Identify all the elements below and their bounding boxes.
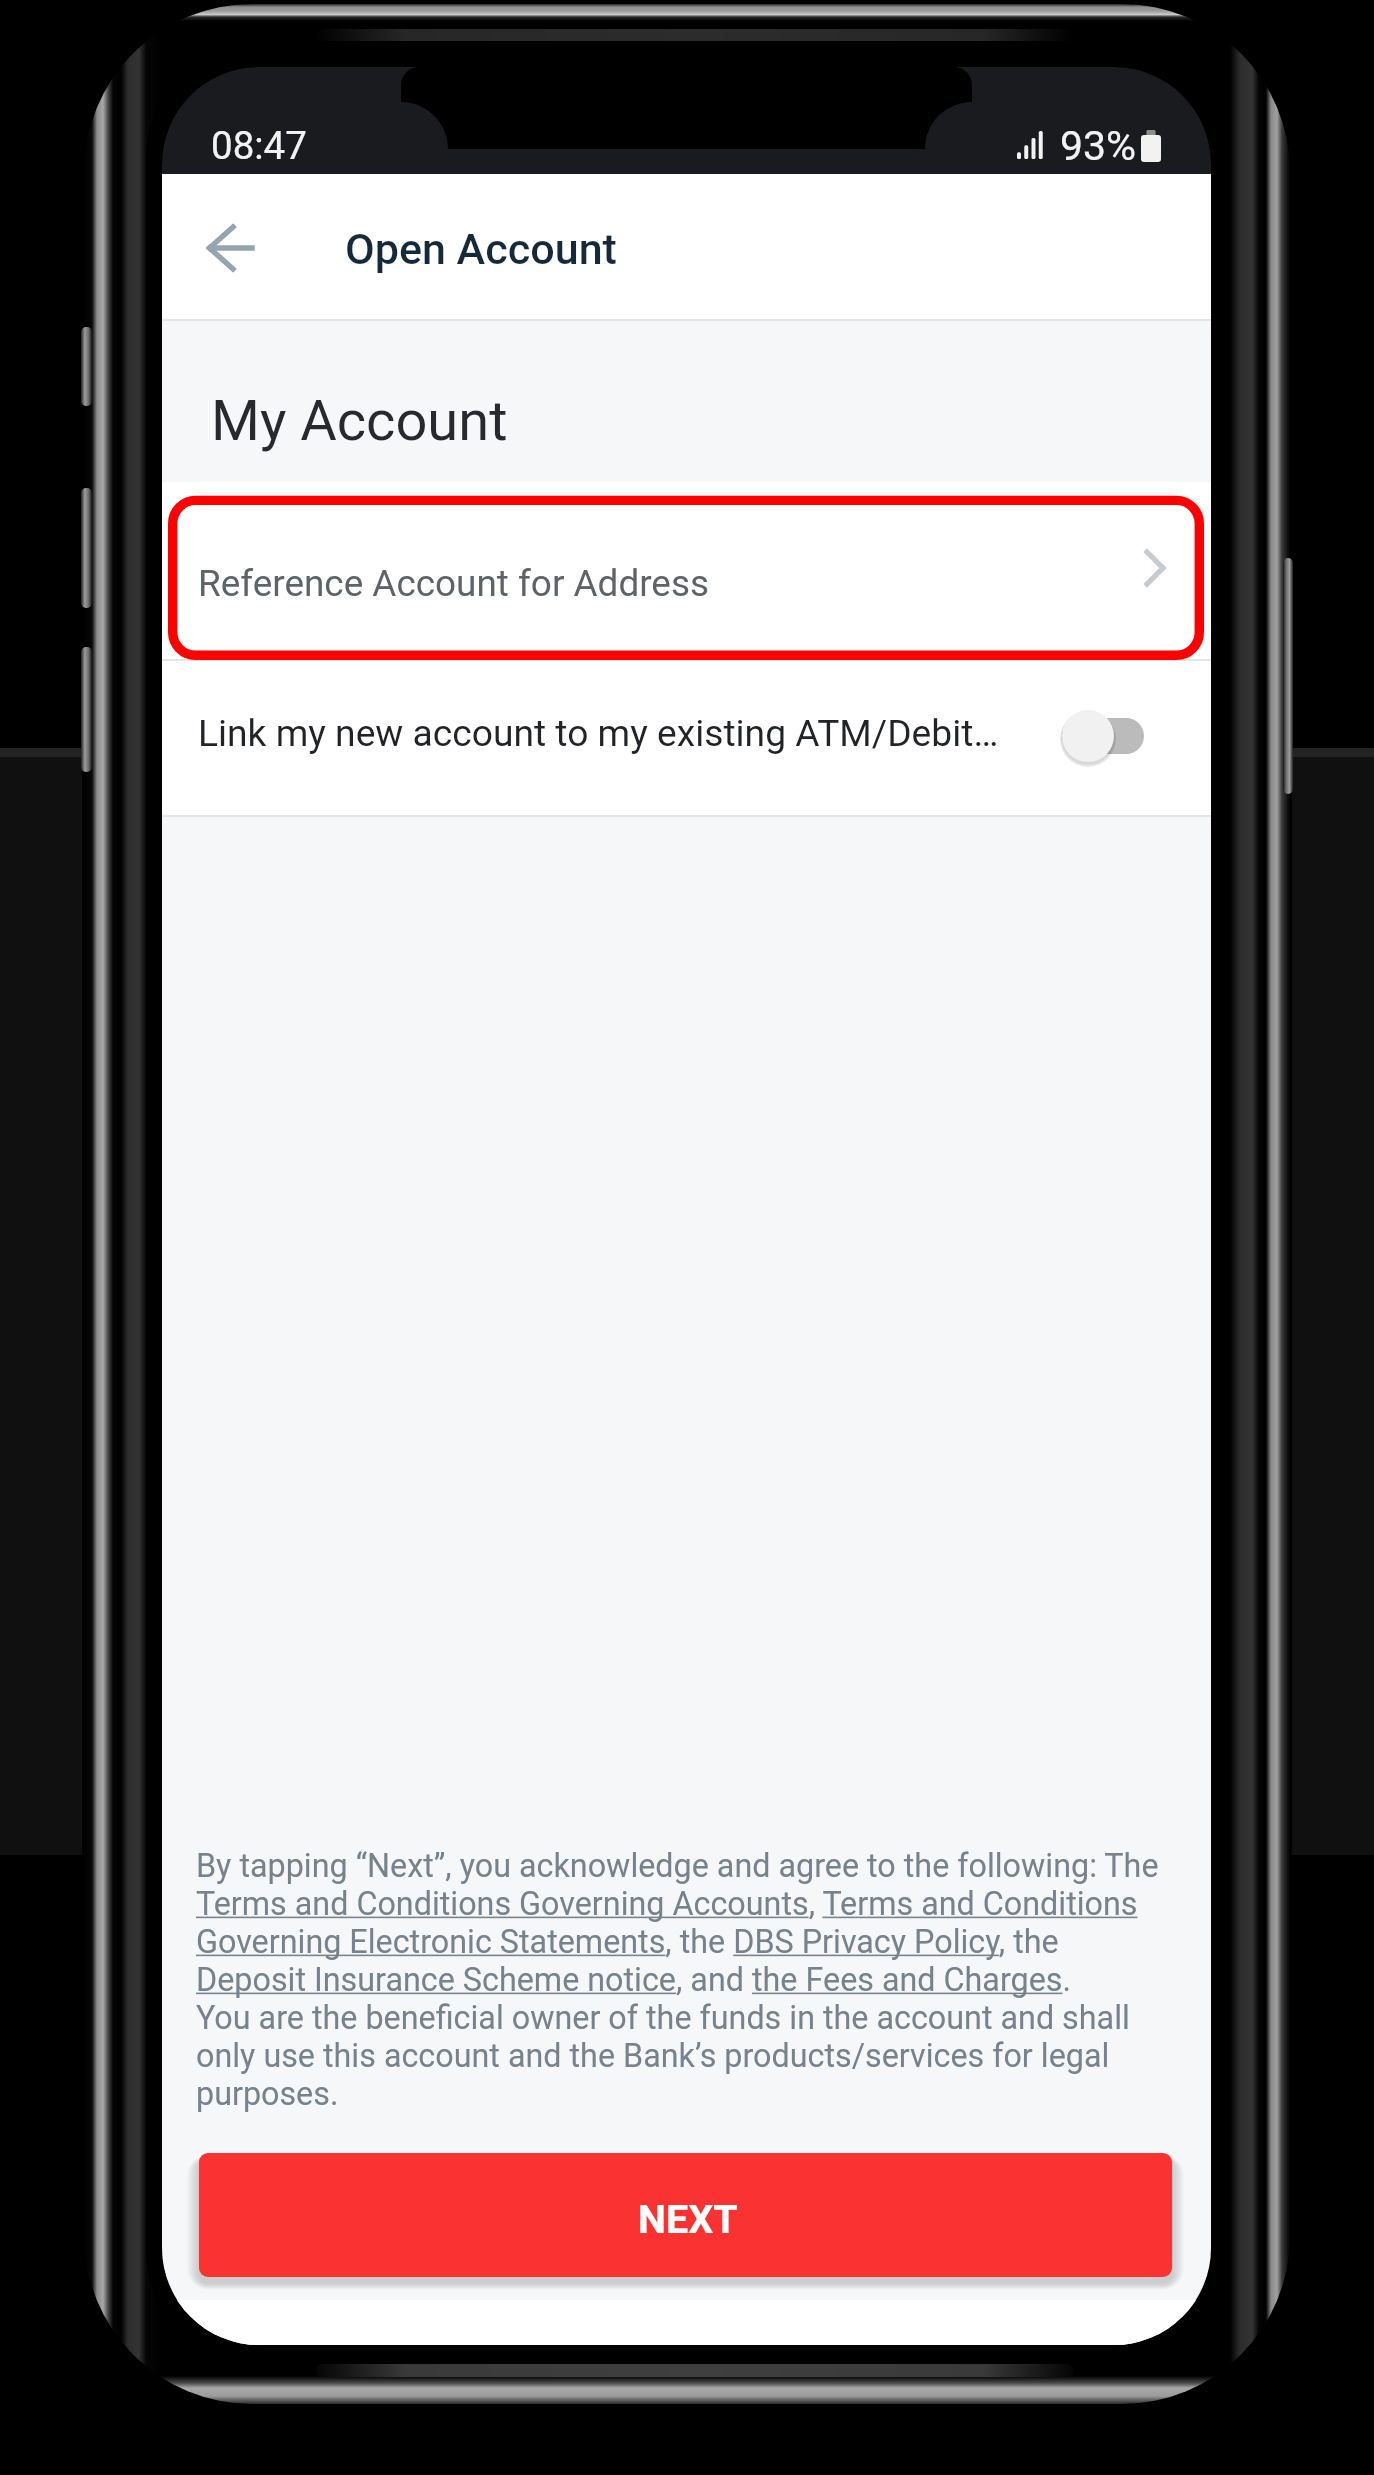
button[interactable]: Back — [191, 208, 271, 288]
button[interactable]: Reference Account for Address — [162, 482, 1211, 659]
button[interactable]: NEXT — [199, 2153, 1172, 2277]
button[interactable]: Link my new account to my existing ATM/D… — [1053, 698, 1153, 774]
staticText: By tapping “Next”, you acknowledge and a… — [196, 1847, 1206, 2113]
staticText: My Account — [211, 388, 508, 454]
staticText: 08:47 — [211, 123, 307, 168]
staticText: Open Account — [345, 224, 617, 274]
staticText: Reference Account for Address — [198, 562, 710, 605]
staticText: NEXT — [638, 2196, 738, 2242]
staticText: Link my new account to my existing ATM/D… — [198, 711, 999, 755]
staticText: 93% — [1060, 122, 1137, 170]
